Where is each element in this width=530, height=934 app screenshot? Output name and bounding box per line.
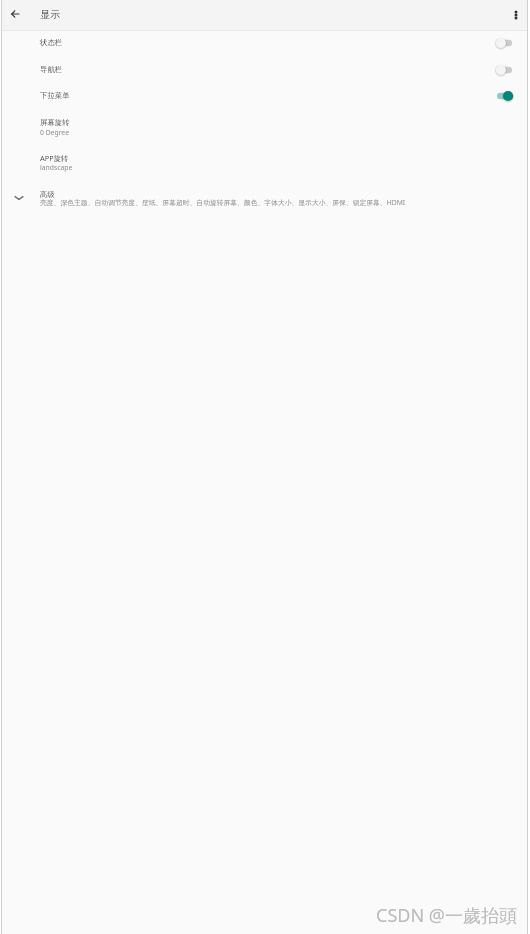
button[interactable]: Back xyxy=(1,0,29,28)
button[interactable]: 下拉菜单 xyxy=(2,87,527,113)
staticText: CSDN @一歲抬頭 xyxy=(376,903,517,928)
staticText: 屏幕旋转 xyxy=(40,118,70,127)
staticText: 下拉菜单 xyxy=(40,91,70,100)
staticText: 亮度、深色主题、自动调节亮度、壁纸、屏幕超时、自动旋转屏幕、颜色、字体大小、显示… xyxy=(40,198,530,207)
staticText: landscape xyxy=(40,163,73,172)
button[interactable]: APP旋转 xyxy=(2,146,527,176)
button[interactable]: 高级 xyxy=(2,183,527,213)
staticText: 0 Degree xyxy=(40,128,69,137)
staticText: 状态栏 xyxy=(40,38,63,47)
staticText: APP旋转 xyxy=(40,153,69,163)
staticText: 显示 xyxy=(40,8,60,21)
button[interactable]: More options xyxy=(502,1,530,29)
staticText: 高级 xyxy=(40,190,55,199)
button[interactable]: 状态栏 xyxy=(2,34,527,60)
button[interactable]: 导航栏 xyxy=(2,61,527,87)
button[interactable]: 屏幕旋转 xyxy=(2,111,527,141)
staticText: 导航栏 xyxy=(40,65,63,74)
